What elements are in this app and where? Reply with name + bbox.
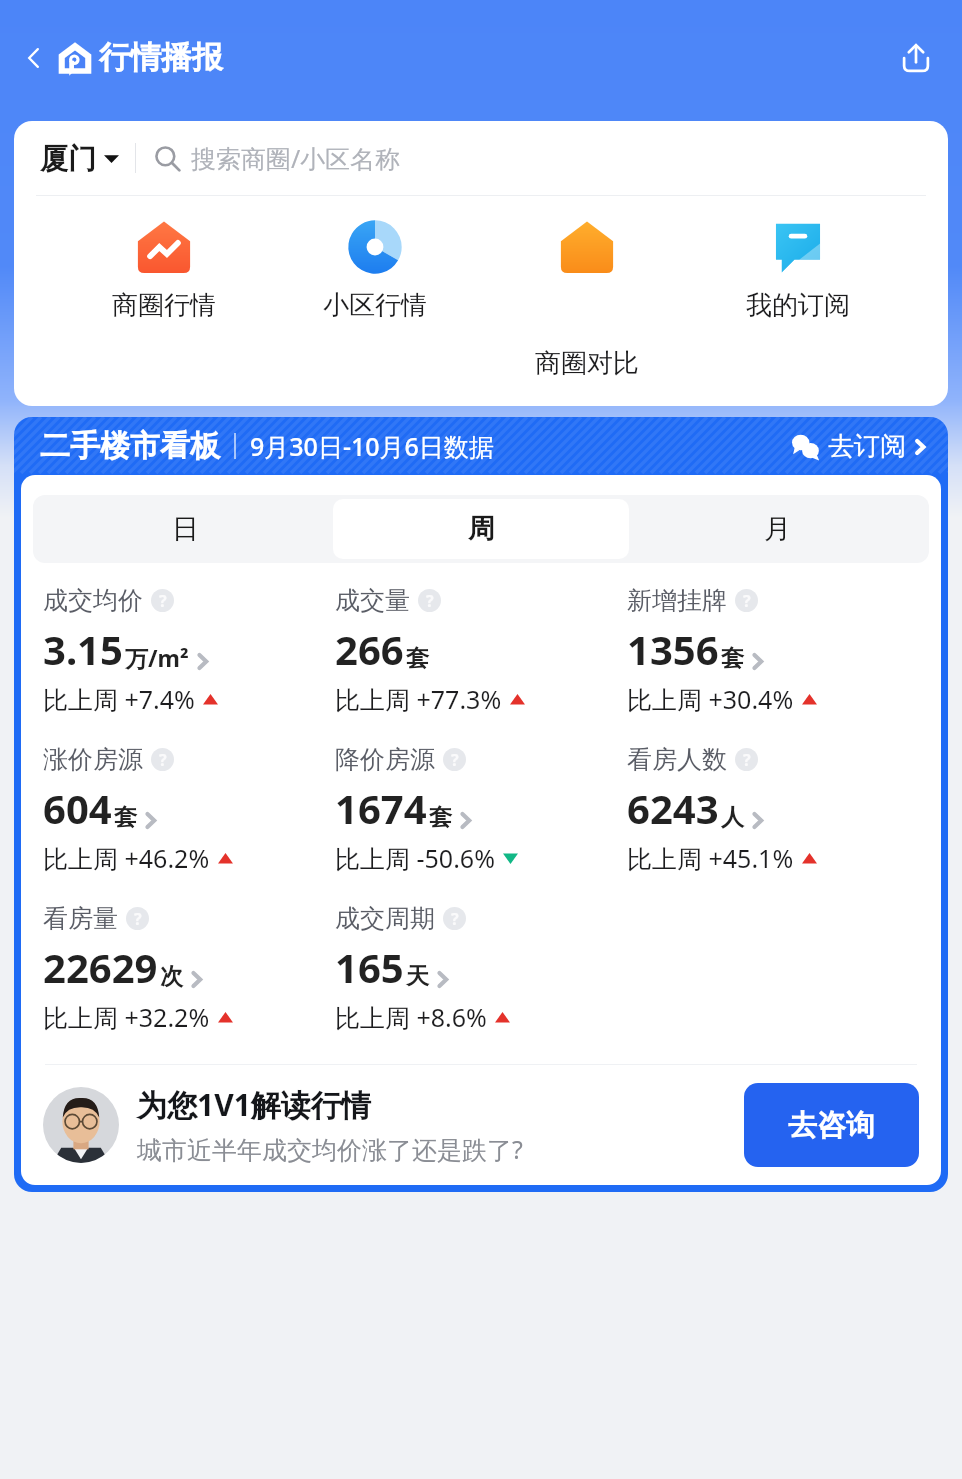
button[interactable]: 为您1V1解读行情 — [21, 1065, 941, 1185]
staticText: ? — [451, 749, 459, 771]
staticText: 比上周 +30.4% — [627, 682, 794, 716]
staticText: 604 — [43, 781, 112, 835]
staticText: ? — [743, 590, 751, 612]
staticText: 165 — [335, 940, 404, 994]
staticText: 9月30日-10月6日数据 — [250, 429, 494, 463]
staticText: 成交量 — [335, 585, 410, 616]
staticText: 小区行情 — [323, 289, 427, 322]
staticText: 降价房源 — [335, 744, 435, 775]
staticText: 比上周 +32.2% — [43, 1000, 210, 1034]
button[interactable]: Share — [890, 32, 942, 84]
staticText: 月 — [764, 512, 791, 546]
staticText: 去订阅 — [828, 430, 906, 463]
staticText: ? — [451, 908, 459, 930]
staticText: 万/m² — [125, 642, 189, 673]
staticText: 去咨询 — [788, 1107, 875, 1144]
staticText: 商圈对比 — [535, 347, 639, 380]
staticText: 涨价房源 — [43, 744, 143, 775]
button[interactable]: 日 — [37, 499, 333, 559]
staticText: 266 — [335, 622, 404, 676]
button[interactable]: 厦门 — [14, 121, 948, 195]
staticText: 日 — [172, 512, 199, 546]
staticText: 3.15 — [43, 622, 123, 676]
staticText: 比上周 +7.4% — [43, 682, 195, 716]
button[interactable]: 新增挂牌 — [627, 585, 919, 716]
button[interactable]: 月 — [629, 499, 925, 559]
staticText: 1356 — [627, 622, 719, 676]
staticText: 1674 — [335, 781, 427, 835]
button[interactable]: 去咨询 — [744, 1083, 919, 1167]
staticText: 城市近半年成交均价涨了还是跌了? — [137, 1132, 523, 1166]
button[interactable]: Back — [14, 38, 54, 78]
staticText: ? — [134, 908, 142, 930]
button[interactable]: 成交均价 — [43, 585, 335, 716]
button[interactable]: 成交周期 — [335, 903, 627, 1034]
staticText: 套 — [429, 803, 452, 832]
button[interactable]: 我的订阅 — [736, 218, 860, 322]
staticText: 套 — [406, 644, 429, 673]
staticText: 天 — [406, 962, 429, 991]
staticText: 我的订阅 — [746, 289, 850, 322]
staticText: 商圈行情 — [112, 289, 216, 322]
button[interactable]: 涨价房源 — [43, 744, 335, 875]
staticText: 比上周 +77.3% — [335, 682, 502, 716]
staticText: 22629 — [43, 940, 158, 994]
staticText: 周 — [468, 512, 495, 546]
staticText: 套 — [721, 644, 744, 673]
button[interactable]: 成交量 — [335, 585, 627, 716]
staticText: ? — [743, 749, 751, 771]
staticText: 成交周期 — [335, 903, 435, 934]
staticText: ? — [159, 590, 167, 612]
staticText: 厦门 — [40, 141, 96, 176]
button[interactable]: 看房人数 — [627, 744, 919, 875]
staticText: 为您1V1解读行情 — [137, 1084, 371, 1125]
staticText: 比上周 +45.1% — [627, 841, 794, 875]
button[interactable]: 周 — [333, 499, 629, 559]
staticText: 套 — [114, 803, 137, 832]
staticText: 比上周 +46.2% — [43, 841, 210, 875]
button[interactable]: 商圈行情 — [102, 218, 226, 322]
staticText: 行情播报 — [99, 38, 223, 77]
staticText: 新增挂牌 — [627, 585, 727, 616]
button[interactable]: 去订阅 — [792, 430, 928, 463]
staticText: 次 — [160, 962, 183, 991]
staticText: 人 — [721, 803, 744, 832]
staticText: 看房量 — [43, 903, 118, 934]
staticText: 看房人数 — [627, 744, 727, 775]
staticText: ? — [159, 749, 167, 771]
button[interactable]: 降价房源 — [335, 744, 627, 875]
staticText: ? — [426, 590, 434, 612]
staticText: 比上周 +8.6% — [335, 1000, 487, 1034]
button[interactable]: 看房量 — [43, 903, 335, 1034]
staticText: 二手楼市看板 — [40, 427, 220, 465]
staticText: 6243 — [627, 781, 719, 835]
button[interactable]: 小区行情 — [313, 218, 437, 322]
staticText: 搜索商圈/小区名称 — [191, 141, 401, 175]
staticText: 成交均价 — [43, 585, 143, 616]
button[interactable]: VS — [525, 218, 649, 380]
staticText: 比上周 -50.6% — [335, 841, 495, 875]
